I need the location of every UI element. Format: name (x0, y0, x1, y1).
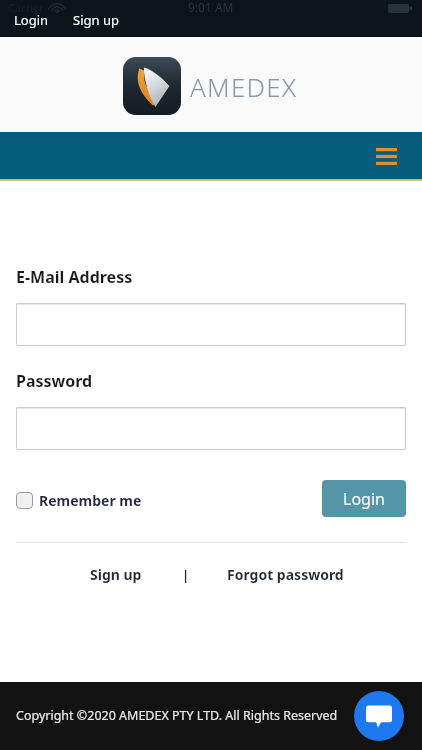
button[interactable]: AMEDEX (123, 57, 298, 115)
staticText: Login (343, 488, 385, 510)
button[interactable]: Sign up (86, 561, 146, 588)
staticText: Remember me (39, 491, 142, 510)
button[interactable]: Sign up (71, 11, 121, 29)
staticText: E-Mail Address (16, 266, 133, 288)
staticText: Sign up (73, 11, 119, 29)
staticText: AMEDEX (190, 69, 298, 104)
staticText: Carrier (8, 0, 44, 15)
button[interactable]: Remember me (16, 487, 142, 514)
button[interactable]: Menu (370, 140, 402, 172)
staticText: Password (16, 370, 93, 392)
button[interactable]: Forgot password (223, 561, 348, 588)
staticText: 9:01 AM (188, 0, 234, 15)
staticText: Login (14, 11, 49, 29)
button[interactable]: Chat (354, 691, 404, 741)
staticText: Sign up (90, 565, 142, 584)
button[interactable] (16, 303, 406, 346)
button[interactable]: Login (12, 11, 51, 29)
button[interactable]: Login (322, 480, 406, 517)
staticText: Copyright ©2020 AMEDEX PTY LTD. All Righ… (16, 707, 338, 724)
staticText: Forgot password (227, 565, 344, 584)
button[interactable] (16, 407, 406, 450)
staticText: | (182, 566, 190, 584)
